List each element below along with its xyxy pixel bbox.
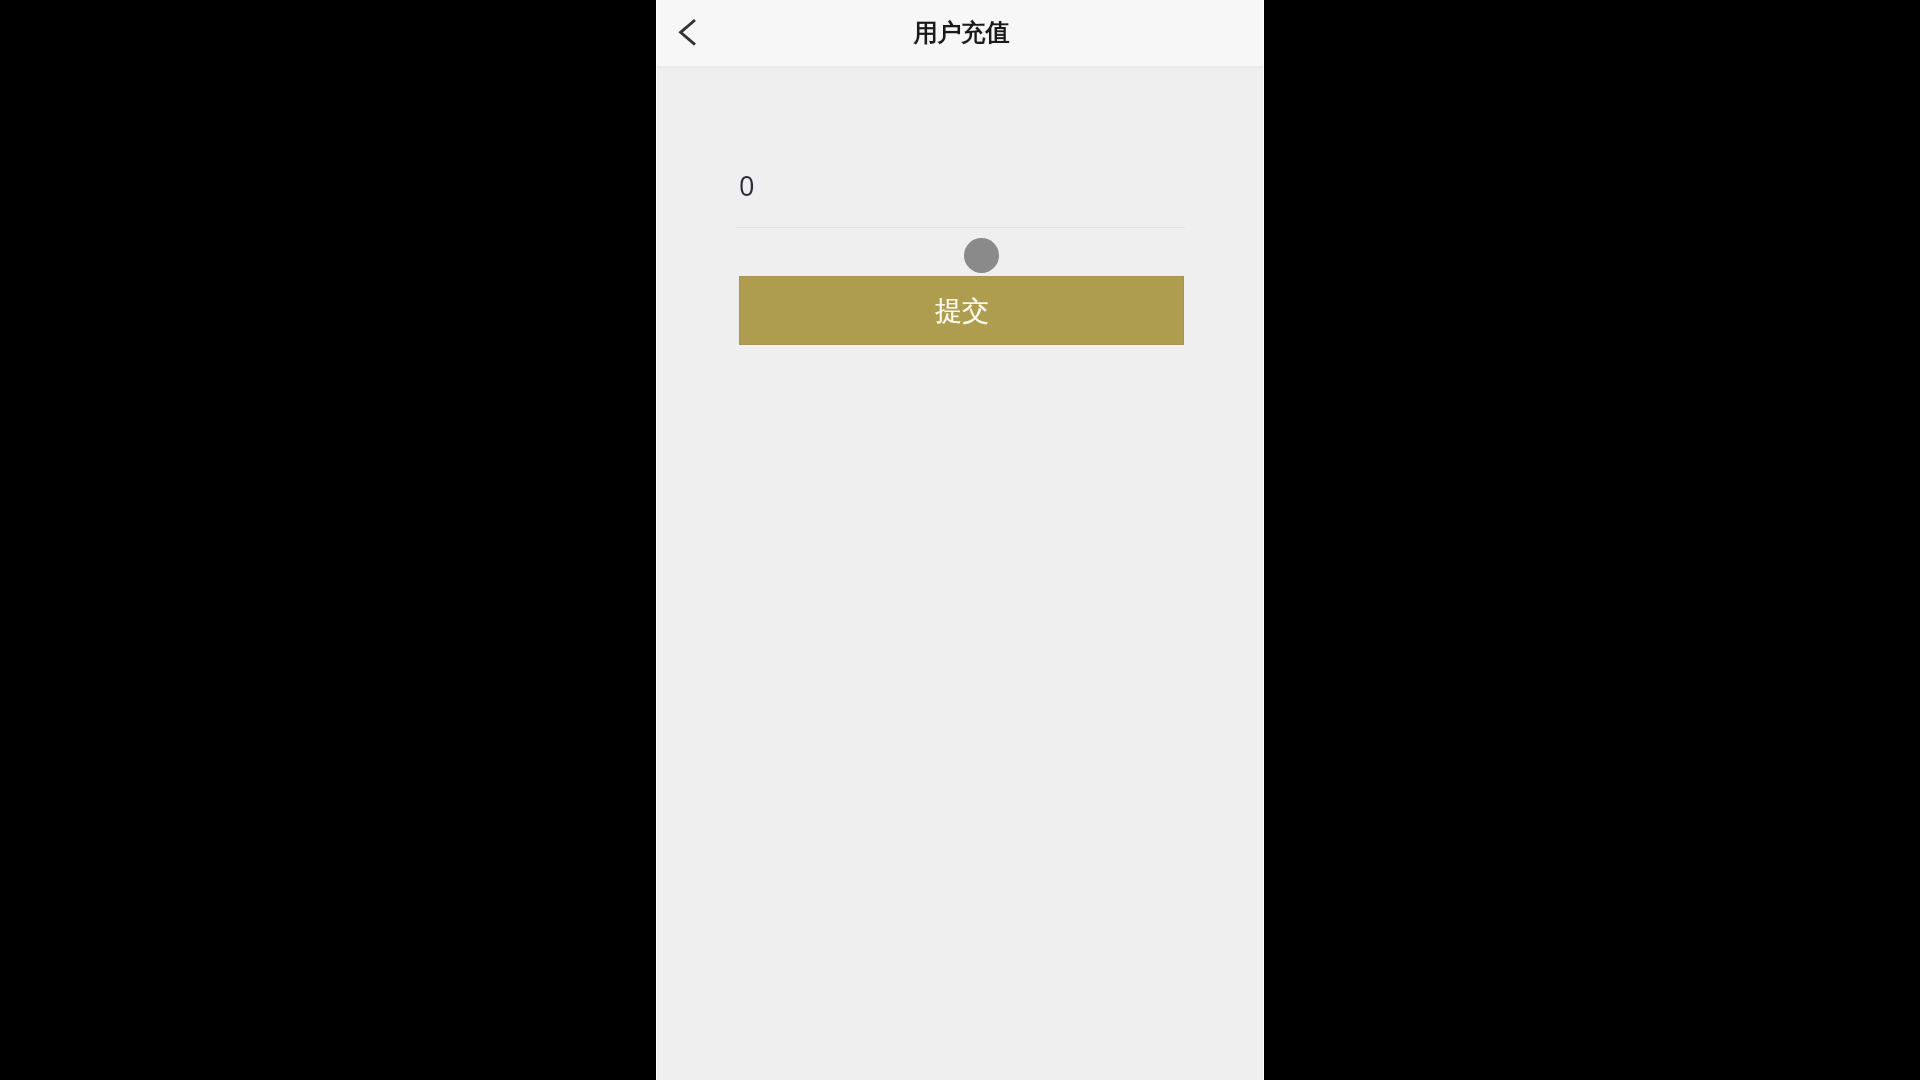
staticText: 提交 (935, 294, 989, 328)
staticText: 0 (739, 167, 755, 204)
button[interactable]: Back (663, 8, 711, 56)
button[interactable]: 提交 (739, 276, 1184, 345)
staticText: 用户充值 (913, 18, 1009, 48)
